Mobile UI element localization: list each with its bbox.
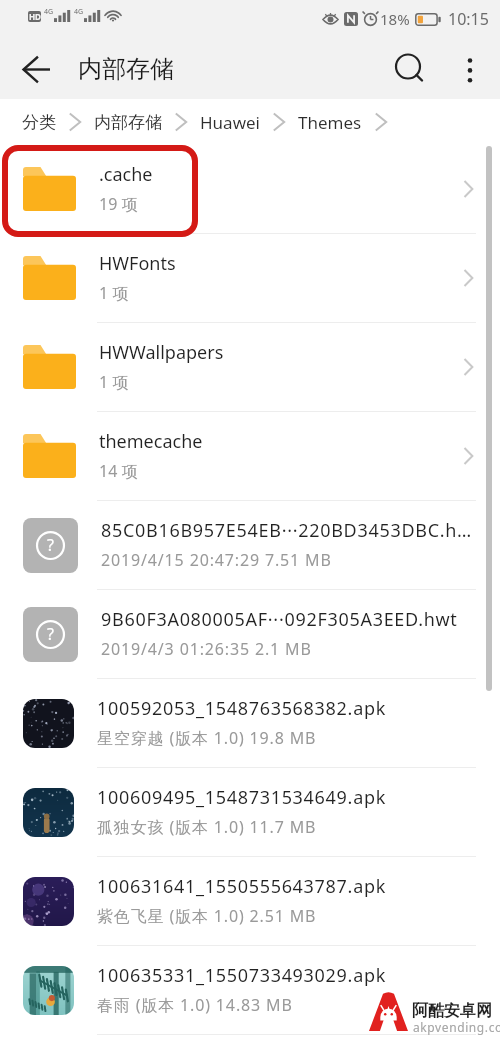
- staticText: 紫色飞星 (版本 1.0) 2.51 MB: [97, 905, 317, 927]
- staticText: 10:15: [448, 8, 489, 30]
- button[interactable]: 分类: [21, 106, 57, 139]
- staticText: HWWallpapers: [99, 340, 224, 365]
- button[interactable]: 内部存储: [93, 106, 163, 139]
- button[interactable]: ?: [0, 501, 500, 590]
- staticText: 100592053_1548763568382.apk: [97, 696, 387, 721]
- button[interactable]: 100635331_1550733493029.apk: [0, 946, 500, 1035]
- button[interactable]: More options: [446, 45, 494, 93]
- button[interactable]: Huawei: [199, 105, 261, 140]
- staticText: 1 项: [99, 282, 129, 304]
- button[interactable]: HWWallpapers: [0, 323, 500, 412]
- staticText: 9B60F3A080005AF···092F305A3EED.hwt: [101, 607, 458, 632]
- staticText: 85C0B16B957E54EB···220BD3453DBC.hwt: [101, 518, 476, 543]
- button[interactable]: HWFonts: [0, 234, 500, 323]
- button[interactable]: themecache: [0, 412, 500, 501]
- staticText: 内部存储: [94, 112, 162, 133]
- staticText: HD: [29, 11, 41, 22]
- staticText: 2019/4/15 20:47:29 7.51 MB: [101, 549, 332, 571]
- staticText: 100631641_1550555643787.apk: [97, 874, 387, 899]
- staticText: HWFonts: [99, 251, 176, 276]
- staticText: 内部存储: [78, 54, 174, 84]
- staticText: 孤独女孩 (版本 1.0) 11.7 MB: [97, 816, 317, 838]
- staticText: ?: [47, 534, 54, 556]
- staticText: 14 项: [99, 460, 138, 482]
- staticText: 18%: [380, 9, 410, 29]
- staticText: 春雨 (版本 1.0) 14.83 MB: [97, 994, 293, 1016]
- staticText: 1 项: [99, 371, 129, 393]
- staticText: 19 项: [99, 193, 138, 215]
- staticText: .cache: [99, 162, 153, 187]
- staticText: ?: [47, 623, 54, 645]
- button[interactable]: 100592053_1548763568382.apk: [0, 679, 500, 768]
- staticText: Themes: [298, 111, 362, 134]
- staticText: themecache: [99, 429, 203, 454]
- staticText: 2019/4/3 01:26:35 2.1 MB: [101, 638, 312, 660]
- staticText: Huawei: [200, 111, 260, 134]
- staticText: akpvending.com: [413, 1019, 500, 1035]
- staticText: 4G: [74, 7, 84, 17]
- button[interactable]: 100609495_1548731534649.apk: [0, 768, 500, 857]
- staticText: 100635331_1550733493029.apk: [97, 963, 387, 988]
- staticText: 4G: [44, 7, 54, 17]
- button[interactable]: Themes: [297, 105, 363, 140]
- staticText: 分类: [22, 112, 56, 133]
- staticText: 星空穿越 (版本 1.0) 19.8 MB: [97, 727, 317, 749]
- staticText: 阿酷安卓网: [412, 1001, 492, 1021]
- staticText: 100609495_1548731534649.apk: [97, 785, 387, 810]
- button[interactable]: .cache: [0, 145, 500, 234]
- button[interactable]: Search: [386, 45, 434, 93]
- button[interactable]: Back: [8, 41, 64, 97]
- button[interactable]: 100631641_1550555643787.apk: [0, 857, 500, 946]
- button[interactable]: ?: [0, 590, 500, 679]
